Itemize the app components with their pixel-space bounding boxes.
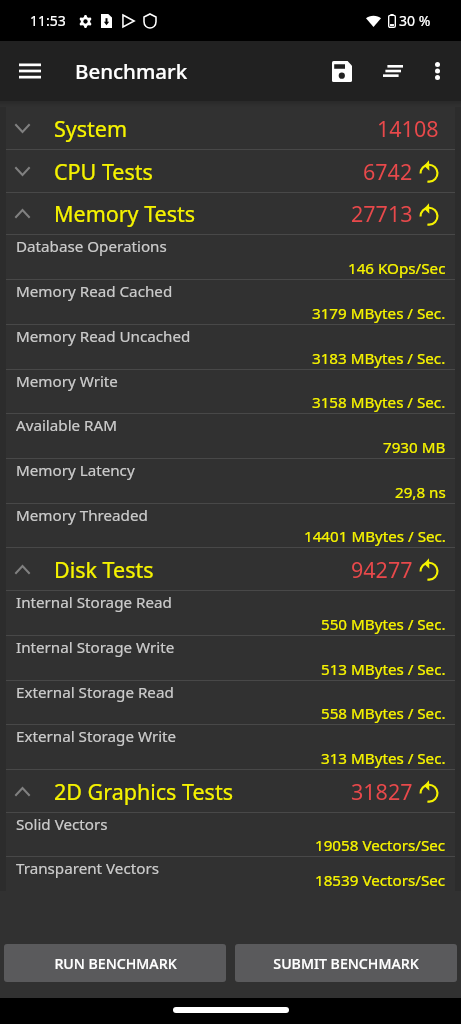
staticText: Memory Latency xyxy=(16,460,135,481)
staticText: Benchmark xyxy=(75,57,188,85)
staticText: Disk Tests xyxy=(54,555,154,584)
staticText: CPU Tests xyxy=(54,157,153,186)
staticText: 27713 xyxy=(351,199,413,228)
button[interactable]: Available RAM xyxy=(6,414,455,459)
button[interactable]: Internal Storage Read xyxy=(6,591,455,636)
button[interactable]: Open navigation drawer xyxy=(11,52,49,90)
staticText: 29,8 ns xyxy=(395,482,446,503)
staticText: Memory Tests xyxy=(54,199,196,228)
button[interactable]: Solid Vectors xyxy=(6,813,455,857)
staticText: 3179 MBytes / Sec. xyxy=(312,303,446,324)
button[interactable]: Re-run CPU Tests xyxy=(418,160,440,182)
button[interactable]: Memory Read Uncached xyxy=(6,325,455,370)
button[interactable]: Memory Latency xyxy=(6,459,455,504)
button[interactable]: External Storage Write xyxy=(6,725,455,770)
button[interactable]: CPU Tests xyxy=(6,150,455,193)
staticText: Internal Storage Write xyxy=(16,637,175,658)
button[interactable]: Memory Threaded xyxy=(6,504,455,548)
staticText: 513 MBytes / Sec. xyxy=(321,659,446,680)
button[interactable]: SUBMIT BENCHMARK xyxy=(235,944,457,982)
button[interactable]: Database Operations xyxy=(6,235,455,280)
staticText: 94277 xyxy=(351,555,413,584)
staticText: External Storage Write xyxy=(16,726,177,747)
staticText: RUN BENCHMARK xyxy=(54,954,177,973)
button[interactable]: Memory Write xyxy=(6,370,455,414)
staticText: 14401 MBytes / Sec. xyxy=(304,526,446,547)
button[interactable]: Save benchmark results xyxy=(320,49,364,93)
staticText: External Storage Read xyxy=(16,682,174,703)
button[interactable]: External Storage Read xyxy=(6,681,455,725)
staticText: Solid Vectors xyxy=(16,814,108,835)
staticText: Database Operations xyxy=(16,236,167,257)
staticText: Memory Read Cached xyxy=(16,281,173,302)
staticText: 14108 xyxy=(377,114,439,143)
staticText: Memory Read Uncached xyxy=(16,326,191,347)
button[interactable]: Re-run Memory Tests xyxy=(418,203,440,225)
staticText: 550 MBytes / Sec. xyxy=(321,614,446,635)
staticText: 3183 MBytes / Sec. xyxy=(312,348,446,369)
button[interactable]: Re-run 2D Graphics Tests xyxy=(418,780,440,802)
staticText: Transparent Vectors xyxy=(16,858,159,879)
button[interactable]: Transparent Vectors xyxy=(6,857,455,891)
staticText: Internal Storage Read xyxy=(16,592,172,613)
button[interactable]: RUN BENCHMARK xyxy=(4,944,226,982)
button[interactable]: 2D Graphics Tests xyxy=(6,770,455,813)
staticText: 6742 xyxy=(363,157,413,186)
staticText: 30 % xyxy=(399,11,431,30)
staticText: Memory Write xyxy=(16,371,118,392)
button[interactable]: Internal Storage Write xyxy=(6,636,455,681)
button[interactable]: Re-run Disk Tests xyxy=(418,558,440,580)
staticText: 558 MBytes / Sec. xyxy=(321,703,446,724)
button[interactable]: System xyxy=(6,107,455,150)
staticText: Available RAM xyxy=(16,415,117,436)
staticText: 7930 MB xyxy=(383,437,446,458)
staticText: 18539 Vectors/Sec xyxy=(315,870,446,891)
staticText: 146 KOps/Sec xyxy=(348,258,446,279)
staticText: SUBMIT BENCHMARK xyxy=(273,954,419,973)
staticText: Memory Threaded xyxy=(16,505,148,526)
staticText: 2D Graphics Tests xyxy=(54,777,233,806)
staticText: 11:53 xyxy=(30,11,66,30)
staticText: 31827 xyxy=(351,777,413,806)
button[interactable]: Disk Tests xyxy=(6,548,455,591)
button[interactable]: Memory Tests xyxy=(6,193,455,235)
button[interactable]: More options xyxy=(415,49,459,93)
staticText: 3158 MBytes / Sec. xyxy=(312,392,446,413)
staticText: 313 MBytes / Sec. xyxy=(321,748,446,769)
button[interactable]: Memory Read Cached xyxy=(6,280,455,325)
button[interactable]: Sort results xyxy=(371,49,415,93)
staticText: 19058 Vectors/Sec xyxy=(315,835,446,856)
staticText: System xyxy=(54,114,128,143)
